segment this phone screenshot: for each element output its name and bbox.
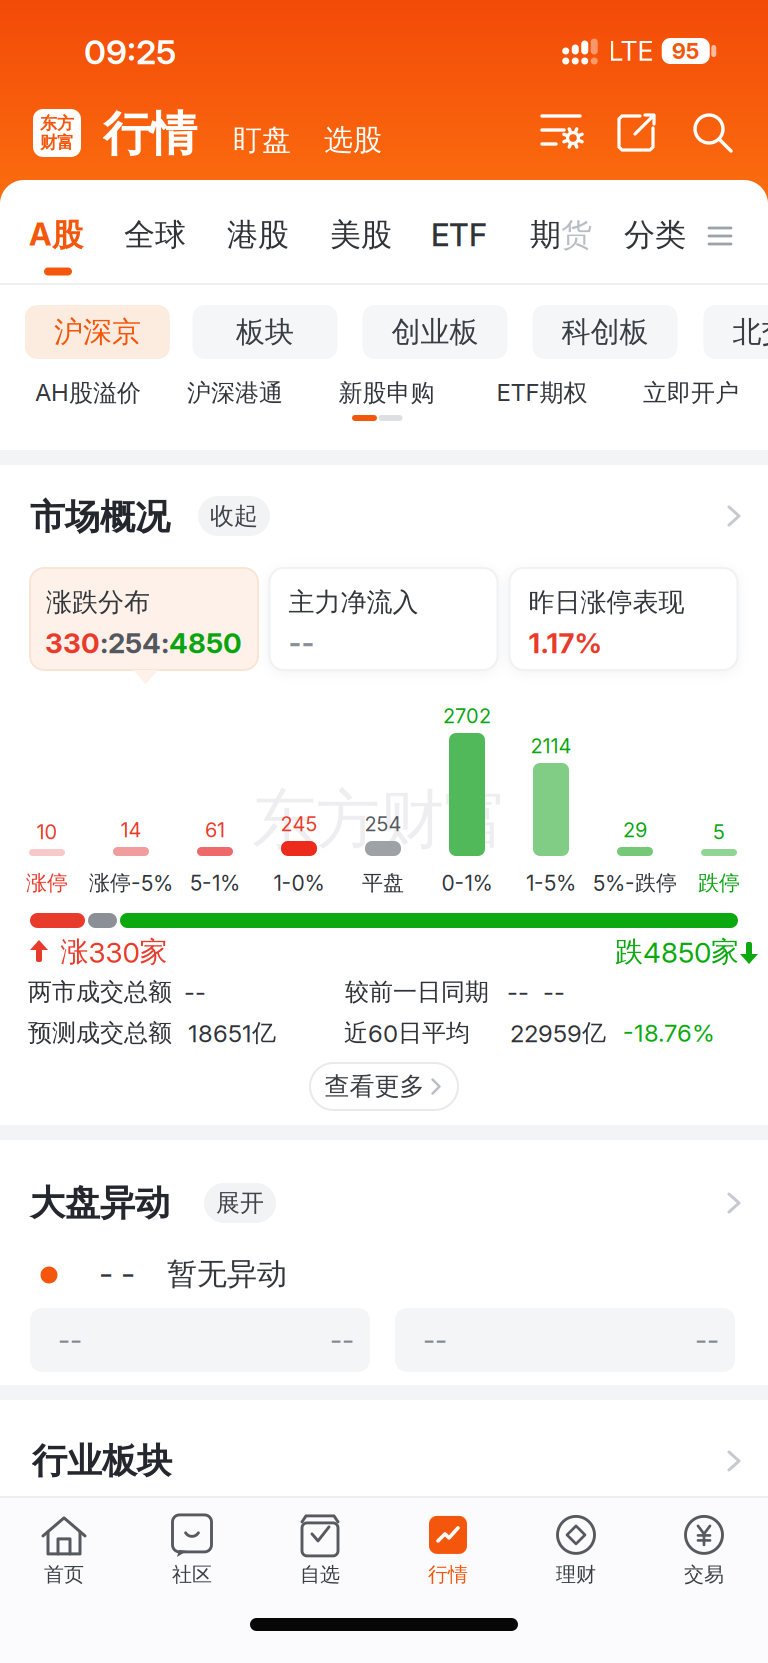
staticText: 行情 bbox=[103, 104, 197, 164]
button[interactable]: 板块 bbox=[192, 305, 337, 359]
staticText: -- bbox=[58, 1324, 82, 1356]
staticText: 自选 bbox=[300, 1562, 340, 1587]
staticText: 展开 bbox=[216, 1188, 264, 1218]
button[interactable]: 涨跌分布 bbox=[30, 568, 258, 670]
staticText: 跌4850家 bbox=[615, 934, 739, 970]
staticText: 主力净流入 bbox=[288, 586, 418, 619]
button[interactable]: 分类 bbox=[624, 215, 686, 255]
staticText: 1.17% bbox=[528, 626, 602, 660]
staticText: -- bbox=[423, 1324, 447, 1356]
button[interactable]: 自选设置 bbox=[540, 111, 584, 155]
staticText: 财富 bbox=[40, 132, 74, 153]
staticText: - - bbox=[99, 1254, 135, 1292]
staticText: 交易 bbox=[684, 1562, 724, 1587]
button[interactable]: AH股溢价 bbox=[35, 378, 141, 408]
staticText: 两市成交总额 bbox=[28, 977, 172, 1007]
staticText: 港股 bbox=[227, 215, 289, 255]
staticText: : bbox=[161, 626, 169, 660]
staticText: 分类 bbox=[624, 215, 686, 255]
button[interactable]: 选股 bbox=[324, 122, 382, 158]
button[interactable]: 昨日涨停表现 bbox=[509, 568, 737, 670]
staticText: 22959亿 bbox=[510, 1018, 606, 1048]
staticText: ETF bbox=[431, 216, 487, 254]
staticText: 0-1% bbox=[441, 870, 492, 896]
button[interactable]: 新股申购 bbox=[338, 378, 434, 408]
staticText: 市场概况 bbox=[30, 495, 170, 539]
staticText: 4850 bbox=[169, 626, 242, 660]
staticText: 涨跌分布 bbox=[46, 586, 150, 619]
staticText: -- bbox=[695, 1324, 719, 1356]
button[interactable]: 更多分类 bbox=[709, 226, 731, 246]
button[interactable]: 收起 bbox=[198, 496, 270, 536]
button[interactable]: 分享 bbox=[614, 111, 658, 155]
button[interactable]: 行情 bbox=[393, 1508, 503, 1592]
button[interactable]: -- bbox=[395, 1308, 735, 1372]
staticText: 行业板块 bbox=[32, 1439, 172, 1483]
staticText: 涨停-5% bbox=[89, 870, 173, 896]
button[interactable]: 港股 bbox=[227, 215, 289, 255]
button[interactable]: 搜索 bbox=[690, 110, 734, 154]
button[interactable]: 沪深京 bbox=[25, 305, 170, 359]
staticText: 18651亿 bbox=[188, 1018, 276, 1048]
button[interactable]: 社区 bbox=[137, 1508, 247, 1592]
button[interactable]: 沪深港通 bbox=[187, 378, 283, 408]
button[interactable]: 立即开户 bbox=[643, 378, 739, 408]
button[interactable]: 更多大盘异动 bbox=[721, 1190, 747, 1216]
staticText: 2702 bbox=[443, 704, 491, 728]
staticText: 期 bbox=[530, 215, 561, 255]
staticText: -- -- bbox=[507, 977, 565, 1006]
button[interactable]: 自选 bbox=[265, 1508, 375, 1592]
button[interactable]: 科创板 bbox=[532, 305, 677, 359]
staticText: 创业板 bbox=[391, 314, 478, 350]
button[interactable]: A股 bbox=[29, 215, 83, 255]
button[interactable]: 北交所 bbox=[703, 305, 768, 359]
staticText: 2114 bbox=[530, 734, 571, 758]
button[interactable]: ETF bbox=[431, 216, 487, 254]
staticText: 货 bbox=[561, 215, 592, 255]
staticText: A股 bbox=[29, 215, 83, 255]
button[interactable]: 首页 bbox=[9, 1508, 119, 1592]
staticText: 沪深京 bbox=[54, 314, 141, 350]
staticText: 盯盘 bbox=[233, 122, 291, 158]
staticText: 较前一日同期 bbox=[345, 977, 489, 1007]
staticText: 1-5% bbox=[526, 870, 576, 896]
staticText: 涨330家 bbox=[60, 934, 167, 970]
staticText: 沪深港通 bbox=[187, 378, 283, 408]
button[interactable]: 全球 bbox=[124, 215, 186, 255]
button[interactable]: 创业板 bbox=[362, 305, 507, 359]
button[interactable]: 期 bbox=[530, 215, 592, 255]
staticText: -- bbox=[288, 626, 314, 660]
staticText: 暂无异动 bbox=[167, 1255, 287, 1293]
button[interactable]: 盯盘 bbox=[233, 122, 291, 158]
staticText: 立即开户 bbox=[643, 378, 739, 408]
button[interactable]: 查看更多 bbox=[310, 1063, 458, 1110]
button[interactable]: 更多行业板块 bbox=[721, 1448, 747, 1474]
staticText: 涨停 bbox=[26, 870, 68, 896]
button[interactable]: -- bbox=[30, 1308, 370, 1372]
staticText: -- bbox=[184, 977, 206, 1006]
staticText: 全球 bbox=[124, 215, 186, 255]
staticText: -- bbox=[330, 1324, 354, 1356]
button[interactable]: 交易 bbox=[649, 1508, 759, 1592]
staticText: 科创板 bbox=[561, 314, 648, 350]
staticText: 查看更多 bbox=[324, 1071, 424, 1102]
staticText: 5 bbox=[713, 820, 725, 844]
staticText: 社区 bbox=[172, 1562, 212, 1587]
staticText: 北交所 bbox=[732, 314, 768, 350]
button[interactable]: 理财 bbox=[521, 1508, 631, 1592]
button[interactable]: 展开 bbox=[204, 1183, 276, 1223]
staticText: 新股申购 bbox=[338, 378, 434, 408]
button[interactable]: 主力净流入 bbox=[269, 568, 497, 670]
staticText: 95 bbox=[672, 38, 700, 64]
staticText: 14 bbox=[120, 818, 141, 842]
staticText: 29 bbox=[623, 818, 647, 842]
staticText: 5%-跌停 bbox=[593, 870, 677, 896]
button[interactable]: ETF期权 bbox=[496, 378, 587, 408]
staticText: 5-1% bbox=[190, 870, 240, 896]
staticText: AH股溢价 bbox=[35, 378, 141, 408]
staticText: 平盘 bbox=[362, 870, 404, 896]
staticText: 大盘异动 bbox=[30, 1181, 170, 1225]
staticText: LTE bbox=[608, 35, 653, 67]
button[interactable]: 美股 bbox=[330, 215, 392, 255]
button[interactable]: 更多市场概况 bbox=[721, 503, 747, 529]
